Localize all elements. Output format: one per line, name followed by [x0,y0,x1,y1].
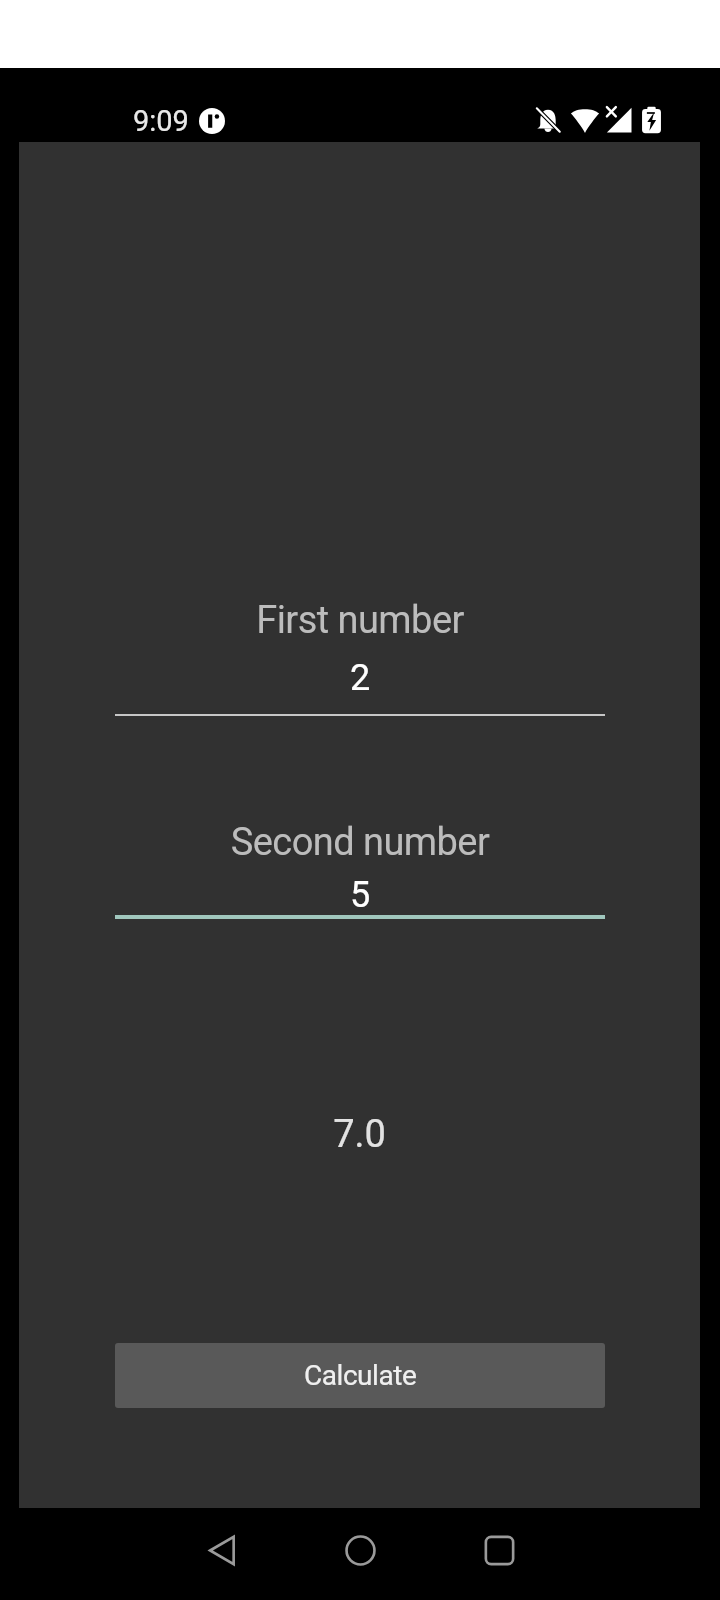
staticText: First number [115,598,605,643]
button[interactable]: Calculate [115,1343,605,1408]
staticText: 5 [115,874,605,916]
staticText: 7.0 [19,1112,700,1157]
button[interactable]: Second number [115,806,605,919]
button[interactable]: Home [320,1510,400,1590]
staticText: Second number [115,820,605,865]
button[interactable]: Back [182,1510,262,1590]
staticText: 2 [115,657,605,699]
staticText: 9:09 [133,104,189,138]
button[interactable]: Recent apps [459,1510,539,1590]
button[interactable]: First number [115,584,605,716]
staticText: Calculate [304,1359,417,1392]
